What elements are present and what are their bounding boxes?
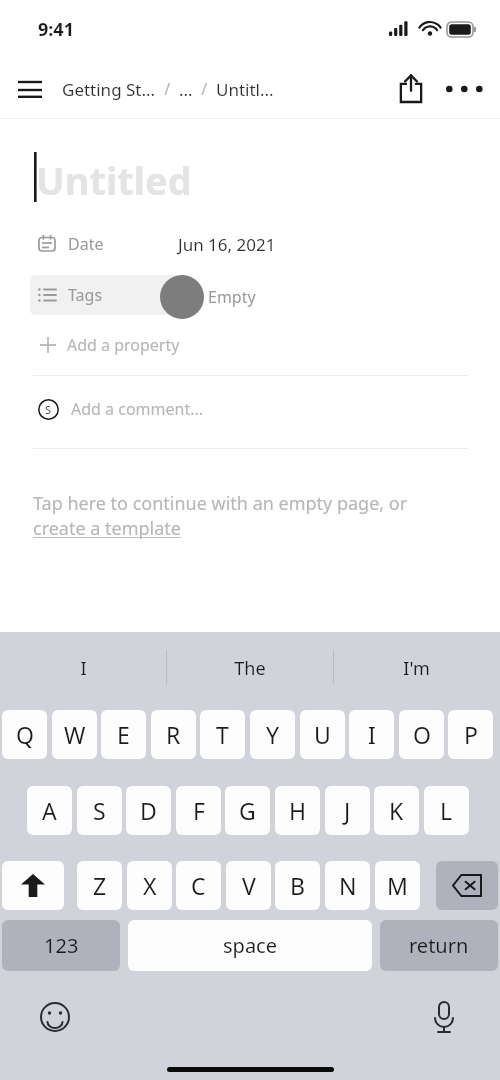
- button[interactable]: Emoji: [33, 995, 77, 1039]
- button[interactable]: S: [77, 786, 122, 835]
- button[interactable]: The: [167, 632, 333, 704]
- staticText: Tags: [68, 284, 103, 306]
- staticText: C: [191, 870, 206, 901]
- staticText: I: [80, 656, 87, 681]
- staticText: I: [368, 719, 376, 750]
- button[interactable]: Add a property: [0, 326, 500, 364]
- staticText: Empty: [208, 286, 256, 308]
- button[interactable]: S: [0, 387, 500, 431]
- staticText: Add a property: [67, 334, 180, 356]
- staticText: R: [166, 719, 181, 750]
- button[interactable]: B: [275, 861, 320, 910]
- button[interactable]: V: [226, 861, 271, 910]
- button[interactable]: J: [325, 786, 370, 835]
- button[interactable]: Z: [77, 861, 122, 910]
- staticText: /: [156, 78, 179, 100]
- button[interactable]: Date: [0, 225, 500, 263]
- staticText: Tap here to continue with an empty page,…: [33, 491, 408, 516]
- staticText: E: [117, 719, 130, 750]
- staticText: X: [143, 870, 157, 901]
- staticText: T: [216, 719, 229, 750]
- staticText: A: [42, 795, 57, 826]
- staticText: V: [242, 870, 256, 901]
- button[interactable]: Q: [2, 710, 47, 759]
- button[interactable]: G: [225, 786, 270, 835]
- staticText: Getting St...: [62, 78, 156, 101]
- button[interactable]: F: [176, 786, 221, 835]
- button[interactable]: space: [128, 920, 372, 971]
- staticText: 9:41: [38, 17, 74, 42]
- button[interactable]: Y: [250, 710, 295, 759]
- staticText: G: [239, 795, 256, 826]
- staticText: Z: [93, 870, 107, 901]
- staticText: /: [193, 78, 216, 100]
- button[interactable]: R: [151, 710, 196, 759]
- staticText: return: [409, 932, 469, 959]
- button[interactable]: return: [380, 920, 498, 971]
- button[interactable]: Tags: [0, 275, 500, 315]
- staticText: Jun 16, 2021: [178, 233, 276, 256]
- button[interactable]: More options: [441, 67, 485, 111]
- button[interactable]: W: [52, 710, 97, 759]
- staticText: W: [64, 719, 86, 750]
- staticText: O: [413, 719, 431, 750]
- button[interactable]: Tap here to continue with an empty page,…: [33, 491, 473, 541]
- button[interactable]: E: [101, 710, 146, 759]
- staticText: M: [387, 870, 408, 901]
- staticText: P: [464, 719, 478, 750]
- staticText: S: [93, 795, 106, 826]
- button[interactable]: N: [325, 861, 370, 910]
- button[interactable]: X: [127, 861, 172, 910]
- button[interactable]: T: [200, 710, 245, 759]
- staticText: I'm: [403, 656, 430, 681]
- staticText: H: [289, 795, 307, 826]
- button[interactable]: Backspace: [436, 861, 498, 910]
- button[interactable]: L: [424, 786, 469, 835]
- button[interactable]: I: [0, 632, 166, 704]
- button[interactable]: C: [176, 861, 221, 910]
- staticText: The: [234, 656, 266, 681]
- button[interactable]: M: [375, 861, 420, 910]
- staticText: Untitled: [36, 154, 192, 206]
- staticText: F: [193, 795, 205, 826]
- staticText: Date: [68, 233, 104, 255]
- staticText: Q: [16, 719, 34, 750]
- staticText: Y: [266, 719, 280, 750]
- button[interactable]: Dictation: [422, 995, 466, 1039]
- staticText: K: [389, 795, 404, 826]
- button[interactable]: I'm: [333, 632, 499, 704]
- button[interactable]: Menu: [8, 68, 52, 112]
- button[interactable]: O: [399, 710, 444, 759]
- staticText: Untitl...: [216, 78, 274, 101]
- button[interactable]: K: [374, 786, 419, 835]
- staticText: J: [344, 795, 351, 826]
- button[interactable]: D: [126, 786, 171, 835]
- button[interactable]: P: [448, 710, 493, 759]
- staticText: D: [140, 795, 157, 826]
- staticText: U: [314, 719, 331, 750]
- staticText: create a template: [33, 516, 182, 541]
- staticText: B: [290, 870, 305, 901]
- button[interactable]: H: [275, 786, 320, 835]
- staticText: S: [45, 402, 52, 417]
- staticText: ...: [179, 78, 193, 101]
- staticText: Add a comment...: [71, 398, 204, 420]
- staticText: 123: [44, 932, 79, 959]
- button[interactable]: Share: [389, 67, 433, 111]
- staticText: L: [440, 795, 453, 826]
- button[interactable]: Getting St...: [62, 60, 372, 118]
- button[interactable]: 123: [2, 920, 120, 971]
- staticText: N: [339, 870, 357, 901]
- button[interactable]: Shift: [2, 861, 64, 910]
- staticText: space: [223, 932, 277, 959]
- button[interactable]: I: [349, 710, 394, 759]
- button[interactable]: U: [300, 710, 345, 759]
- button[interactable]: A: [27, 786, 72, 835]
